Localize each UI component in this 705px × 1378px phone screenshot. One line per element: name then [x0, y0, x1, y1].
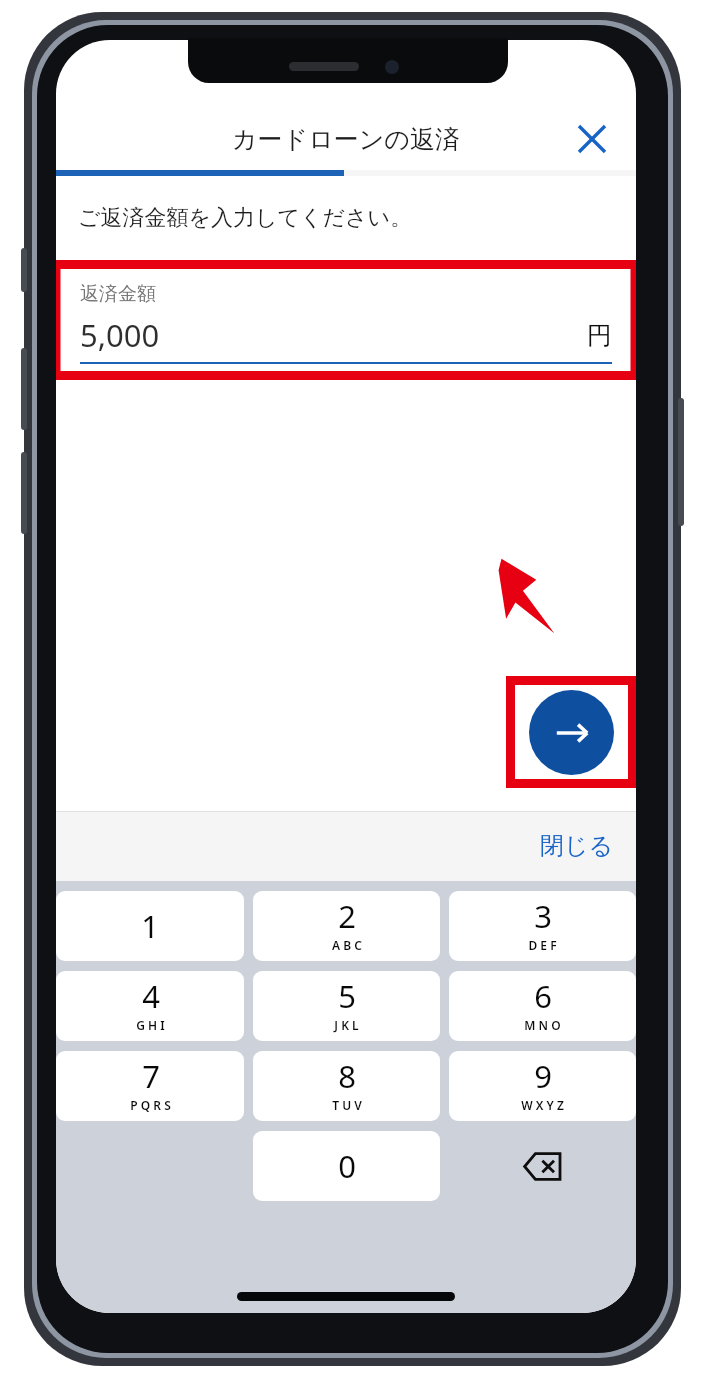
staticText: T U V — [332, 1097, 362, 1113]
button[interactable]: 閉じる — [530, 823, 624, 869]
staticText: 6 — [534, 975, 552, 1017]
staticText: P Q R S — [130, 1097, 171, 1113]
staticText: 7 — [142, 1055, 160, 1097]
staticText: 9 — [534, 1055, 552, 1097]
button[interactable]: 3 — [449, 891, 636, 961]
button[interactable]: 1 — [56, 891, 244, 961]
button[interactable]: 0 — [253, 1131, 440, 1201]
button[interactable]: 4 — [56, 971, 244, 1041]
staticText: J K L — [334, 1017, 359, 1033]
button[interactable]: 7 — [56, 1051, 244, 1121]
staticText: G H I — [136, 1017, 165, 1033]
staticText: A B C — [332, 937, 362, 953]
button[interactable]: カードローンの返済 — [232, 124, 460, 155]
button[interactable]: 削除 — [449, 1131, 636, 1201]
staticText: カードローンの返済 — [232, 124, 460, 155]
staticText: 5,000 — [80, 314, 160, 356]
button[interactable]: 返済金額 — [80, 260, 612, 380]
staticText: 1 — [141, 905, 159, 947]
button[interactable]: 9 — [449, 1051, 636, 1121]
staticText: 4 — [142, 975, 160, 1017]
button[interactable]: 次へ進む — [529, 690, 614, 775]
button[interactable]: 8 — [253, 1051, 440, 1121]
staticText: 0 — [338, 1145, 356, 1187]
staticText: 3 — [534, 895, 552, 937]
staticText: W X Y Z — [521, 1097, 564, 1113]
staticText: 2 — [338, 895, 356, 937]
button[interactable]: 閉じる — [568, 115, 616, 163]
staticText: 閉じる — [540, 831, 614, 861]
button[interactable]: 2 — [253, 891, 440, 961]
staticText: ご返済金額を入力してください。 — [78, 204, 413, 232]
button[interactable]: 5 — [253, 971, 440, 1041]
staticText: 5 — [338, 975, 356, 1017]
staticText: 返済金額 — [80, 282, 156, 306]
staticText: D E F — [528, 937, 557, 953]
staticText: 円 — [587, 320, 612, 351]
staticText: 8 — [338, 1055, 356, 1097]
button[interactable]: 6 — [449, 971, 636, 1041]
staticText: M N O — [524, 1017, 561, 1033]
